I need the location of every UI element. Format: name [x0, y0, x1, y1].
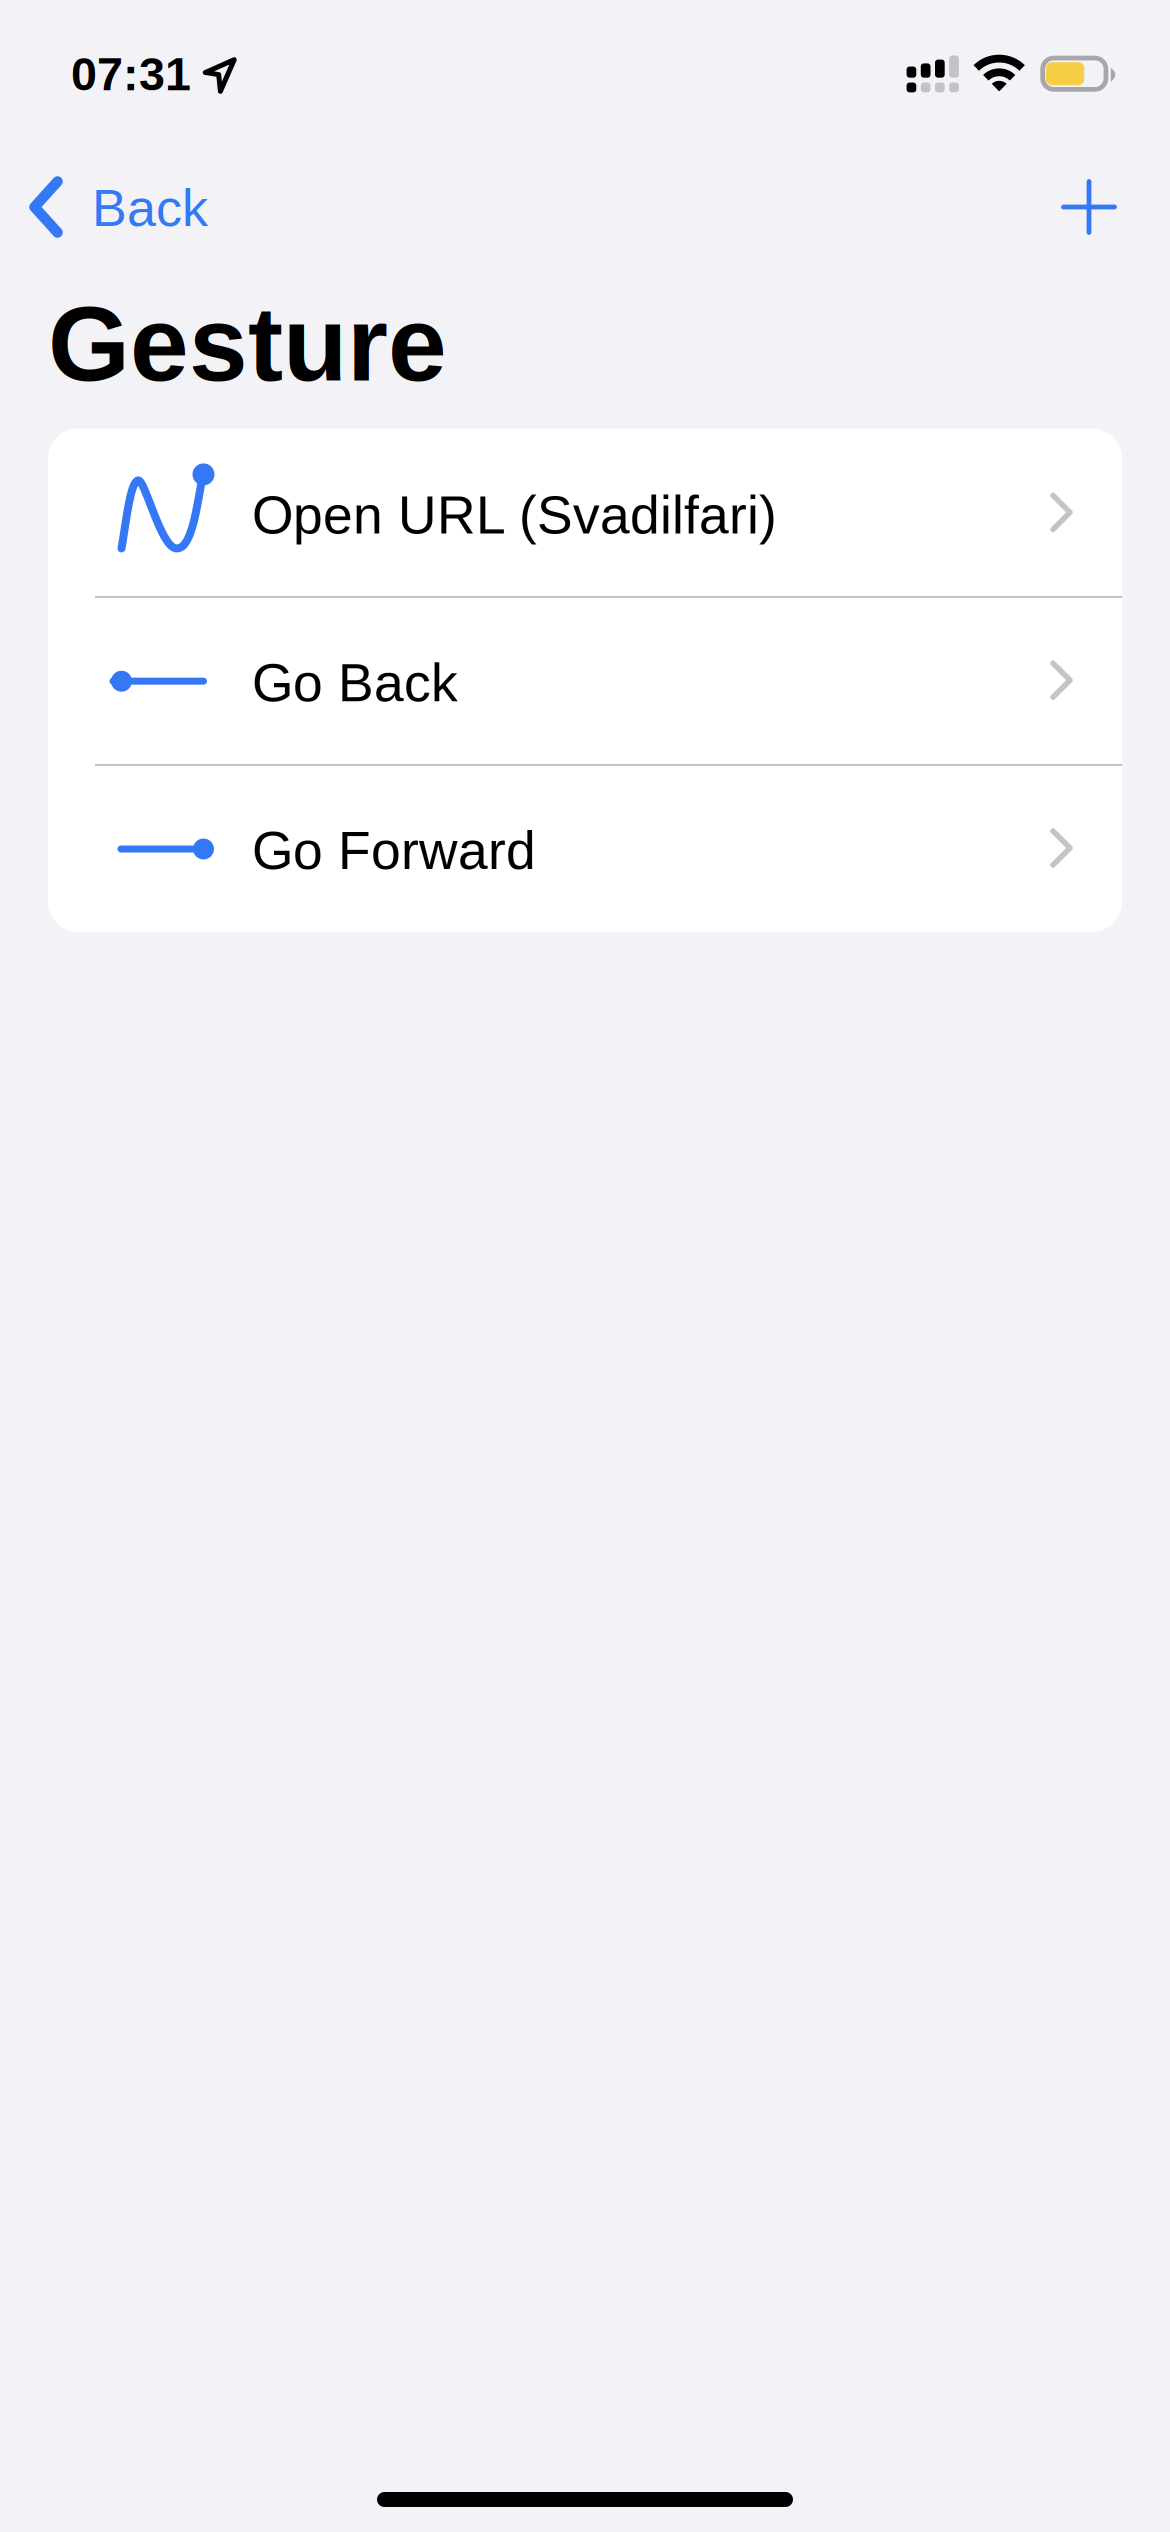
staticText: Gesture	[48, 285, 447, 403]
button[interactable]: Go Forward	[48, 764, 1122, 932]
button[interactable]: Go Back	[48, 596, 1122, 764]
staticText: Go Back	[252, 653, 458, 712]
staticText: 07:31	[71, 48, 191, 100]
staticText: Open URL (Svadilfari)	[252, 485, 777, 545]
staticText: Go Forward	[252, 821, 536, 880]
button[interactable]: Open URL (Svadilfari)	[48, 428, 1122, 596]
button[interactable]: Back	[0, 152, 232, 262]
button[interactable]: Add gesture	[1034, 152, 1144, 262]
staticText: Back	[92, 179, 208, 237]
